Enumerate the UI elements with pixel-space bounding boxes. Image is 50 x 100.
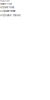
staticText: Airplane mode (0, 10, 15, 13)
staticText: Airplane mode (0, 14, 21, 17)
staticText: Airplane mode (0, 3, 12, 5)
staticText: Airplane mode (0, 6, 14, 9)
staticText: Airplane mode (0, 0, 10, 2)
